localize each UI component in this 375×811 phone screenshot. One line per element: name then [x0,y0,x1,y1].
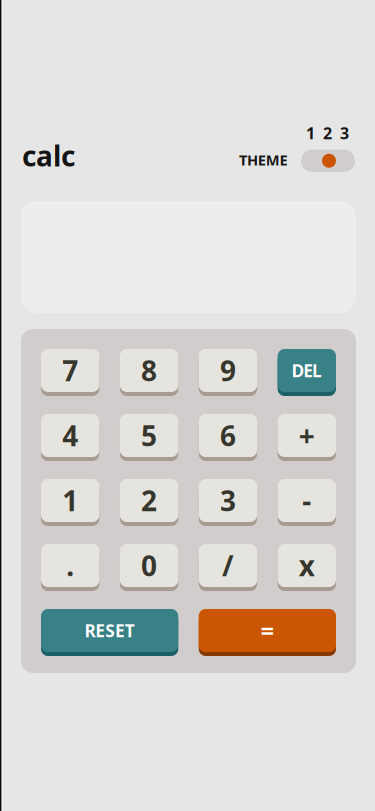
button[interactable]: 5 [120,414,178,461]
button[interactable]: 9 [199,349,257,396]
staticText: 6 [220,417,236,454]
staticText: 4 [62,417,78,454]
button[interactable]: 3 [199,479,257,526]
button[interactable]: . [41,544,99,591]
button[interactable]: Theme 2 [319,127,336,139]
button[interactable]: 8 [120,349,178,396]
button[interactable]: x [278,544,336,591]
staticText: RESET [84,619,135,642]
button[interactable]: = [199,609,336,656]
button[interactable]: Theme 2 selected, change theme [301,149,355,172]
staticText: 1 [62,482,78,519]
staticText: 7 [62,352,78,389]
staticText: - [302,482,311,519]
staticText: . [66,547,74,584]
staticText: 3 [340,122,349,144]
button[interactable]: - [278,479,336,526]
button[interactable]: RESET [41,609,178,656]
button[interactable]: 6 [199,414,257,461]
staticText: x [299,547,315,584]
button[interactable]: / [199,544,257,591]
staticText: / [222,547,234,584]
staticText: 8 [141,352,157,389]
button[interactable]: DEL [278,349,336,396]
button[interactable]: + [278,414,336,461]
staticText: 2 [141,482,157,519]
button[interactable]: 1 [41,479,99,526]
button[interactable]: Theme 1 [302,127,319,139]
staticText: 9 [220,352,236,389]
button[interactable]: 4 [41,414,99,461]
button[interactable]: 2 [120,479,178,526]
button[interactable]: 0 [120,544,178,591]
staticText: 3 [220,482,236,519]
button[interactable]: 7 [41,349,99,396]
staticText: 1 [306,122,315,144]
staticText: = [260,615,274,646]
staticText: THEME [239,150,288,169]
staticText: + [299,417,315,454]
staticText: 5 [141,417,157,454]
staticText: 0 [141,547,157,584]
button[interactable]: calc [22,137,75,174]
staticText: calc [22,137,75,174]
button[interactable]: Theme 3 [336,127,353,139]
staticText: 2 [323,122,332,144]
staticText: DEL [291,359,322,382]
